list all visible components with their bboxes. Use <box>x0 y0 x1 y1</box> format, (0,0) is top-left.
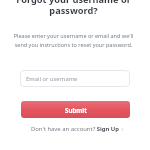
button[interactable]: Don't have an account? Sign Up › <box>31 125 124 133</box>
staticText: Email or username <box>26 75 78 83</box>
button[interactable]: Submit <box>21 101 130 118</box>
staticText: Submit <box>65 106 87 114</box>
button[interactable]: Email or username <box>20 70 130 87</box>
staticText: Please enter your username or email and … <box>10 32 137 48</box>
staticText: Forgot your username or password? <box>10 0 137 17</box>
